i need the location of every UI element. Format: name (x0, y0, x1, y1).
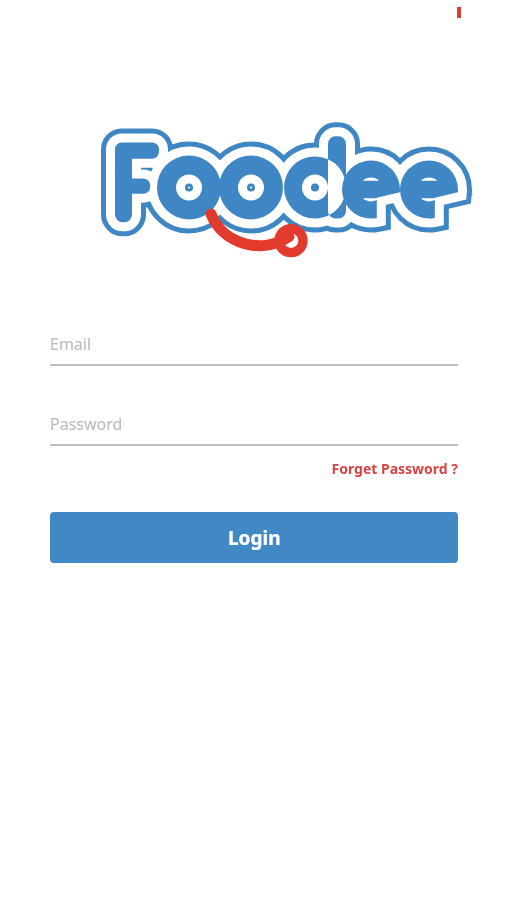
staticText: Email (50, 333, 92, 355)
button[interactable]: Password (50, 402, 458, 446)
staticText: Forget Password ? (331, 459, 458, 478)
staticText: Password (50, 413, 123, 435)
button[interactable]: Email (50, 322, 458, 366)
staticText: Login (228, 525, 281, 551)
button[interactable]: Login (50, 512, 458, 563)
button[interactable]: Forget Password ? (298, 455, 458, 481)
